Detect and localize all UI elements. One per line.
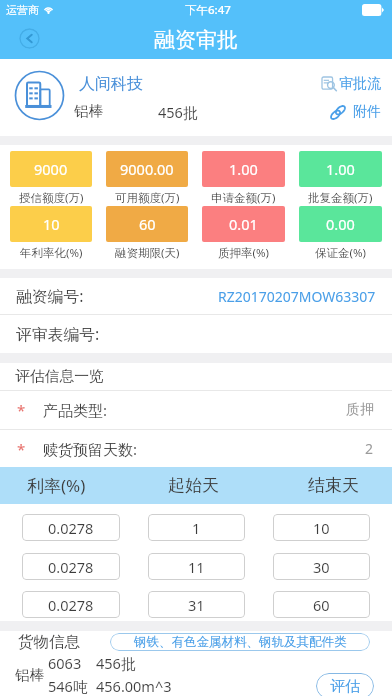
staticText: 保证金(%) xyxy=(315,245,366,261)
staticText: 融资审批 xyxy=(154,27,238,53)
staticText: 6063 xyxy=(48,653,96,673)
staticText: 10 xyxy=(313,518,330,538)
staticText: 456批 xyxy=(96,653,136,673)
button[interactable]: 10 xyxy=(10,206,92,261)
button[interactable]: 评估 xyxy=(316,673,374,696)
staticText: 评审表编号: xyxy=(16,323,100,345)
staticText: 2 xyxy=(365,439,374,458)
staticText: 质押 xyxy=(346,401,374,419)
staticText: 铝棒 xyxy=(74,102,103,120)
button[interactable]: 60 xyxy=(273,591,370,618)
staticText: 9000.00 xyxy=(120,159,174,179)
staticText: * xyxy=(17,400,26,420)
staticText: RZ20170207MOW63307 xyxy=(218,287,376,306)
button[interactable]: 0.0278 xyxy=(22,553,120,580)
button[interactable]: 0.0278 xyxy=(22,591,120,618)
button[interactable]: 附件 xyxy=(329,103,381,121)
staticText: 起始天 xyxy=(168,475,219,496)
button[interactable]: 11 xyxy=(148,553,245,580)
button[interactable]: 1.00 xyxy=(299,151,382,206)
staticText: 30 xyxy=(313,557,330,577)
staticText: 1.00 xyxy=(326,159,355,179)
staticText: 融资期限(天) xyxy=(115,245,180,261)
staticText: 31 xyxy=(188,595,205,615)
staticText: 货物信息 xyxy=(18,632,80,652)
staticText: 下午6:47 xyxy=(185,2,231,18)
staticText: 利率(%) xyxy=(27,474,86,497)
staticText: 546吨 xyxy=(48,676,96,696)
button[interactable]: 1 xyxy=(148,514,245,541)
button[interactable]: 审批流 xyxy=(321,75,381,93)
button[interactable]: 60 xyxy=(106,206,188,261)
staticText: 60 xyxy=(313,595,330,615)
staticText: 60 xyxy=(139,214,156,234)
staticText: 人间科技 xyxy=(79,74,143,94)
button[interactable]: 31 xyxy=(148,591,245,618)
staticText: 0.0278 xyxy=(48,557,94,577)
button[interactable]: 钢铁、有色金属材料、钢轨及其配件类 xyxy=(110,633,370,651)
staticText: 授信额度(万) xyxy=(19,190,84,206)
button[interactable]: * xyxy=(0,391,392,429)
staticText: 评估 xyxy=(330,677,360,696)
staticText: 审批流 xyxy=(339,75,381,93)
staticText: 可用额度(万) xyxy=(115,190,180,206)
staticText: 融资编号: xyxy=(16,285,84,307)
staticText: 附件 xyxy=(353,103,381,121)
staticText: 1.00 xyxy=(229,159,258,179)
staticText: 赎货预留天数: xyxy=(43,439,138,459)
staticText: 运营商 xyxy=(6,3,39,17)
staticText: 评估信息一览 xyxy=(15,367,104,386)
button[interactable]: 10 xyxy=(273,514,370,541)
staticText: * xyxy=(17,439,26,459)
staticText: 10 xyxy=(43,214,60,234)
staticText: 456.00m^3 xyxy=(96,676,172,696)
button[interactable]: 9000.00 xyxy=(106,151,188,206)
staticText: 批复金额(万) xyxy=(308,190,373,206)
button[interactable]: 评审表编号: xyxy=(0,315,392,353)
button[interactable]: 9000 xyxy=(10,151,92,206)
button[interactable]: 0.0278 xyxy=(22,514,120,541)
button[interactable]: * xyxy=(0,430,392,467)
button[interactable]: 30 xyxy=(273,553,370,580)
button[interactable]: 0.00 xyxy=(299,206,382,261)
staticText: 年利率化(%) xyxy=(20,245,83,261)
staticText: 申请金额(万) xyxy=(211,190,276,206)
staticText: 钢铁、有色金属材料、钢轨及其配件类 xyxy=(134,634,347,650)
staticText: 0.00 xyxy=(326,214,355,234)
staticText: 0.0278 xyxy=(48,595,94,615)
button[interactable]: 1.00 xyxy=(202,151,285,206)
button[interactable]: 融资编号: xyxy=(0,278,392,314)
staticText: 铝棒 xyxy=(15,666,44,684)
staticText: 质押率(%) xyxy=(218,245,269,261)
staticText: 0.01 xyxy=(229,214,258,234)
button[interactable]: Back xyxy=(19,28,40,49)
staticText: 结束天 xyxy=(308,475,359,496)
staticText: 456批 xyxy=(158,102,198,122)
button[interactable]: 0.01 xyxy=(202,206,285,261)
staticText: 产品类型: xyxy=(43,400,108,420)
staticText: 1 xyxy=(192,518,201,538)
staticText: 11 xyxy=(188,557,205,577)
staticText: 9000 xyxy=(34,159,68,179)
staticText: 0.0278 xyxy=(48,518,94,538)
